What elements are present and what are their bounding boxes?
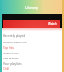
button[interactable]: Top hits xyxy=(2,46,62,50)
button[interactable]: Your playlists xyxy=(2,61,62,66)
button[interactable]: Watch xyxy=(3,20,60,28)
staticText: Your playlists xyxy=(3,62,22,66)
button[interactable]: Discover weekly mix xyxy=(2,39,62,44)
staticText: Discover weekly mix xyxy=(3,40,27,43)
staticText: Library xyxy=(25,5,39,10)
button[interactable]: Made for you xyxy=(2,50,62,55)
staticText: New releases xyxy=(3,56,19,59)
staticText: Recently played xyxy=(3,34,26,38)
button[interactable]: Library xyxy=(2,0,62,14)
staticText: Chill xyxy=(3,67,10,71)
staticText: Made for you xyxy=(3,51,19,54)
button[interactable]: Chill xyxy=(2,67,62,71)
staticText: Top hits xyxy=(3,46,15,50)
button[interactable]: New releases xyxy=(2,55,62,60)
button[interactable]: Recently played xyxy=(2,32,62,39)
staticText: Watch xyxy=(48,22,57,26)
